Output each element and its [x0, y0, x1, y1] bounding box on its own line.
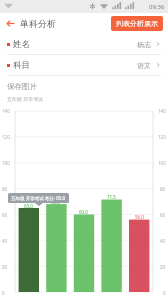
staticText: 140	[2, 108, 10, 114]
staticText: 80	[160, 186, 166, 192]
staticText: 71.5	[107, 194, 116, 200]
staticText: 单科分析	[20, 18, 56, 29]
staticText: 0	[163, 290, 166, 296]
staticText: 60.0	[79, 209, 88, 215]
button[interactable]: 保存图片	[0, 76, 168, 96]
staticText: 40	[160, 238, 166, 244]
staticText: 140	[158, 108, 166, 114]
staticText: 保存图片	[7, 82, 37, 91]
staticText: 0	[2, 290, 5, 296]
staticText: 100	[2, 160, 10, 166]
staticText: 120	[2, 134, 10, 140]
staticText: 语文	[137, 61, 151, 70]
staticText: 科目	[13, 60, 30, 71]
staticText: 五年级 开学考试	[7, 96, 44, 103]
staticText: 80	[2, 186, 8, 192]
button[interactable]: 列表分析展示	[111, 16, 163, 31]
button[interactable]: 科目	[0, 55, 168, 75]
button[interactable]: 姓名	[0, 34, 168, 54]
staticText: 杨志	[137, 40, 151, 49]
staticText: 100	[158, 160, 166, 166]
staticText: 56.0	[135, 214, 144, 220]
staticText: 20	[2, 264, 8, 270]
staticText: 40	[2, 238, 8, 244]
staticText: 列表分析展示	[116, 19, 158, 28]
staticText: 60	[2, 212, 8, 218]
staticText: 姓名	[13, 39, 30, 50]
other: Back	[6, 19, 15, 28]
staticText: 09:36	[149, 3, 165, 11]
staticText: 60	[160, 212, 166, 218]
button[interactable]: Back	[0, 15, 62, 32]
staticText: 68.0	[51, 199, 60, 205]
staticText: 20	[160, 264, 166, 270]
staticText: 120	[158, 134, 166, 140]
staticText: 65.0	[24, 203, 33, 209]
staticText: 五年级 开学考试 考分: 65.0	[11, 195, 66, 201]
